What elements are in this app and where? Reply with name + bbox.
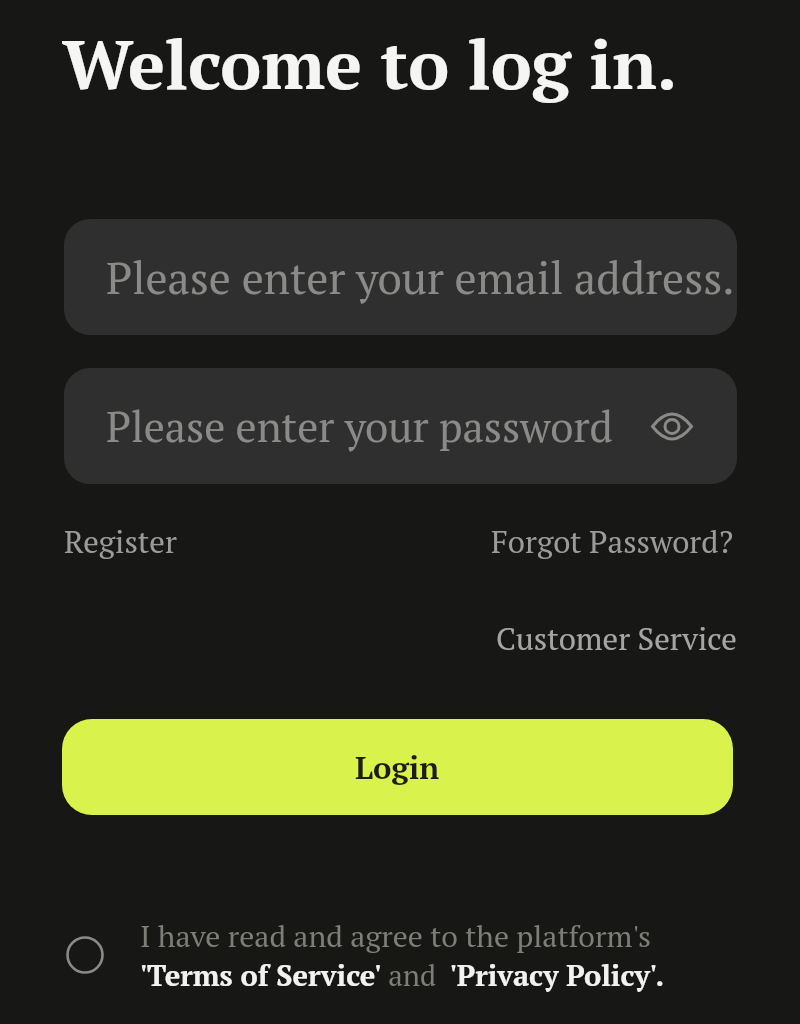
button[interactable]: Register	[64, 521, 177, 562]
button[interactable]: Forgot Password?	[491, 521, 734, 562]
button[interactable]: Login	[62, 719, 733, 815]
staticText: Please enter your password	[106, 398, 613, 454]
staticText: Please enter your email address.	[106, 248, 735, 306]
button[interactable]: Please enter your password	[64, 368, 737, 484]
staticText: Login	[355, 747, 440, 788]
staticText: Welcome to log in.	[62, 17, 678, 108]
button[interactable]	[66, 936, 104, 974]
button[interactable]: Customer Service	[496, 618, 737, 659]
button[interactable]: Please enter your email address.	[64, 219, 737, 335]
button[interactable]: 'Terms of Service' and 'Privacy Policy'.	[140, 956, 665, 994]
staticText: I have read and agree to the platform's	[140, 916, 652, 956]
